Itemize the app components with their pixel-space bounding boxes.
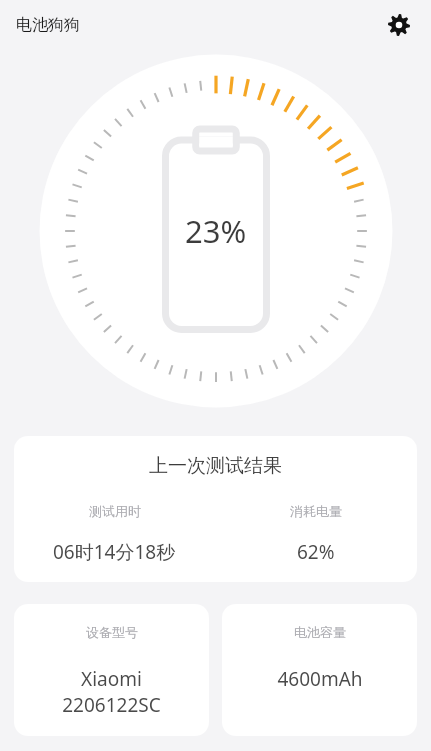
staticText: 06时14分18秒 xyxy=(53,539,176,565)
button[interactable]: Settings xyxy=(381,7,417,43)
staticText: Xiaomi 2206122SC xyxy=(62,666,161,718)
staticText: 电池容量 xyxy=(294,624,346,640)
staticText: 23% xyxy=(185,210,247,252)
staticText: 上一次测试结果 xyxy=(149,454,282,478)
button[interactable]: 设备型号 xyxy=(14,604,209,736)
staticText: 电池狗狗 xyxy=(16,15,80,35)
button[interactable]: 电池容量 xyxy=(222,604,417,736)
staticText: 设备型号 xyxy=(86,624,138,640)
button[interactable]: 上一次测试结果 xyxy=(14,436,417,582)
staticText: 消耗电量 xyxy=(290,503,342,519)
staticText: 测试用时 xyxy=(89,503,141,519)
staticText: 4600mAh xyxy=(277,666,363,692)
staticText: 62% xyxy=(297,539,335,565)
